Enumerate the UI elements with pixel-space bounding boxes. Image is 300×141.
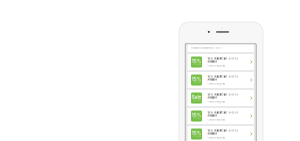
staticText: GUTSCHEIN bbox=[192, 136, 200, 137]
staticText: alles bei bbox=[228, 93, 238, 96]
staticText: Amazon Gutscheine & bbox=[191, 46, 214, 49]
staticText: 15% Rabatt auf bbox=[207, 57, 227, 60]
staticText: 15% bbox=[191, 58, 201, 63]
button[interactable]: 15% bbox=[188, 108, 254, 124]
staticText: alles bei bbox=[228, 57, 238, 60]
staticText: 15% Rabatt auf bbox=[207, 93, 227, 96]
staticText: alles bei bbox=[228, 75, 238, 78]
staticText: Onlinebestellungen bbox=[207, 65, 222, 67]
button[interactable]: 15% bbox=[188, 54, 254, 70]
staticText: alles bei bbox=[228, 129, 238, 132]
staticText: Rabatte bbox=[215, 46, 222, 49]
staticText: Sale bbox=[191, 94, 201, 99]
staticText: Amazon bbox=[207, 96, 217, 99]
staticText: Onlinebestellungen bbox=[207, 137, 222, 139]
staticText: Amazon bbox=[207, 114, 217, 117]
staticText: 15% bbox=[191, 130, 201, 135]
staticText: 15% Rabatt auf bbox=[207, 111, 227, 114]
staticText: GUTSCHEIN bbox=[192, 64, 200, 65]
staticText: Amazon bbox=[207, 132, 217, 135]
staticText: Onlinebestellungen bbox=[207, 101, 222, 103]
staticText: GUTSCHEIN bbox=[192, 100, 200, 101]
button[interactable]: Sale bbox=[188, 90, 254, 106]
button[interactable]: 15% bbox=[188, 126, 254, 141]
staticText: 15% Rabatt auf bbox=[207, 129, 227, 132]
staticText: alles bei bbox=[228, 111, 238, 114]
staticText: Amazon bbox=[207, 78, 217, 81]
staticText: 15% bbox=[191, 76, 201, 81]
button[interactable]: 15% bbox=[188, 72, 254, 88]
staticText: 15% bbox=[191, 112, 201, 117]
staticText: Amazon bbox=[207, 60, 217, 63]
staticText: Onlinebestellungen bbox=[207, 83, 222, 85]
staticText: GUTSCHEIN bbox=[192, 118, 200, 119]
staticText: GUTSCHEIN bbox=[192, 82, 200, 83]
staticText: 15% Rabatt auf bbox=[207, 75, 227, 78]
staticText: Onlinebestellungen bbox=[207, 119, 222, 121]
